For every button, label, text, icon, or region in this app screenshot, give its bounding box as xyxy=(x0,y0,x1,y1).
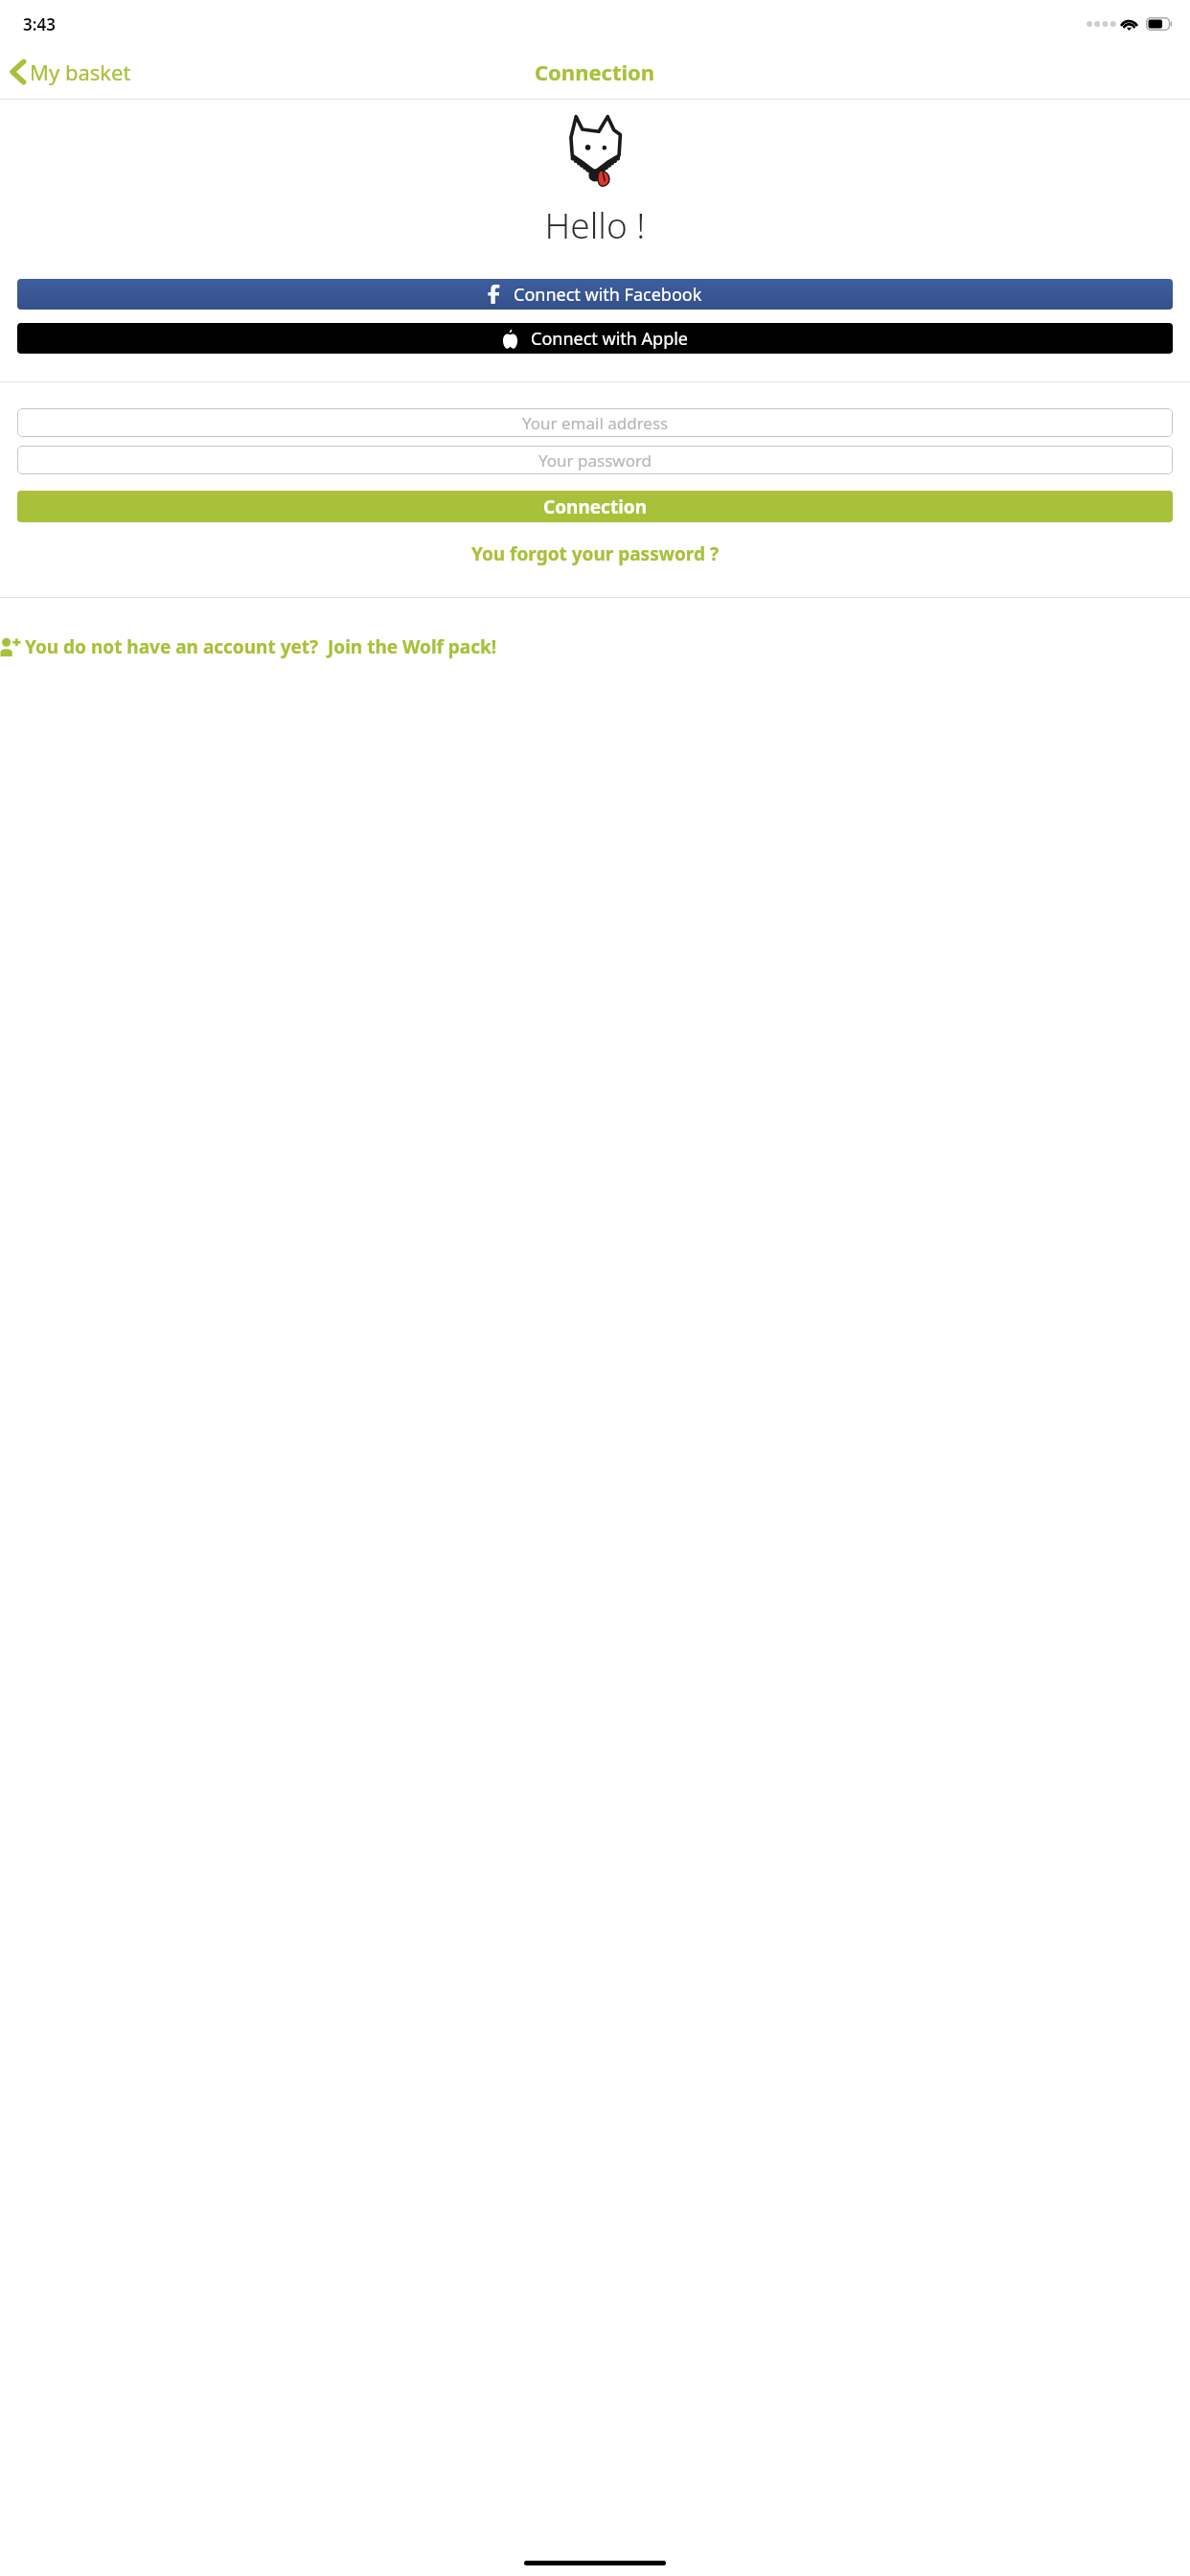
button[interactable]: Connect with Apple xyxy=(17,323,1173,354)
staticText: Your email address xyxy=(522,412,669,434)
staticText: My basket xyxy=(30,57,131,86)
other: Create an account xyxy=(0,637,21,656)
button[interactable]: Your email address xyxy=(17,408,1173,437)
staticText: Your password xyxy=(538,449,652,471)
staticText: Connection xyxy=(543,494,648,519)
button[interactable]: Your password xyxy=(17,446,1173,474)
staticText: Connect with Apple xyxy=(531,327,689,351)
button[interactable]: Back xyxy=(10,57,131,86)
staticText: Connect with Facebook xyxy=(514,283,702,307)
button[interactable]: Connection xyxy=(17,491,1173,522)
staticText: Connection xyxy=(535,57,655,86)
button[interactable]: Connect with Facebook xyxy=(17,279,1173,310)
button[interactable]: Create an account xyxy=(0,634,1190,659)
other: Back xyxy=(10,58,27,85)
button[interactable]: You forgot your password ? xyxy=(0,541,1190,566)
staticText: You forgot your password ? xyxy=(471,541,719,566)
staticText: Hello ! xyxy=(0,200,1190,248)
staticText: You do not have an account yet? Join the… xyxy=(25,634,497,659)
staticText: 3:43 xyxy=(23,13,56,35)
